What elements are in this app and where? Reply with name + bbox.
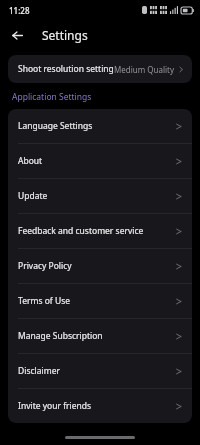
staticText: Manage Subscription [18, 330, 103, 342]
staticText: 11:28 [9, 5, 30, 16]
staticText: Privacy Policy [18, 260, 72, 272]
staticText: Disclaimer [18, 365, 60, 377]
staticText: Shoot resolution setting [18, 63, 114, 75]
button[interactable]: Update [8, 179, 192, 213]
staticText: Settings [42, 27, 88, 43]
button[interactable]: Feedback and customer service [8, 214, 192, 248]
button[interactable]: About [8, 144, 192, 178]
button[interactable]: Shoot resolution setting [8, 55, 192, 83]
staticText: Feedback and customer service [18, 225, 144, 237]
staticText: About [18, 155, 43, 167]
button[interactable]: Terms of Use [8, 284, 192, 318]
button[interactable]: Language Settings [8, 109, 192, 143]
staticText: Application Settings [12, 91, 92, 103]
button[interactable]: Manage Subscription [8, 319, 192, 353]
staticText: Language Settings [18, 120, 93, 132]
button[interactable]: Invite your friends [8, 389, 192, 423]
staticText: Medium Quality [114, 64, 175, 75]
staticText: Invite your friends [18, 400, 92, 412]
staticText: Terms of Use [18, 295, 71, 307]
button[interactable]: Disclaimer [8, 354, 192, 388]
staticText: Update [18, 190, 48, 202]
button[interactable]: Privacy Policy [8, 249, 192, 283]
button[interactable]: Back [8, 26, 26, 44]
